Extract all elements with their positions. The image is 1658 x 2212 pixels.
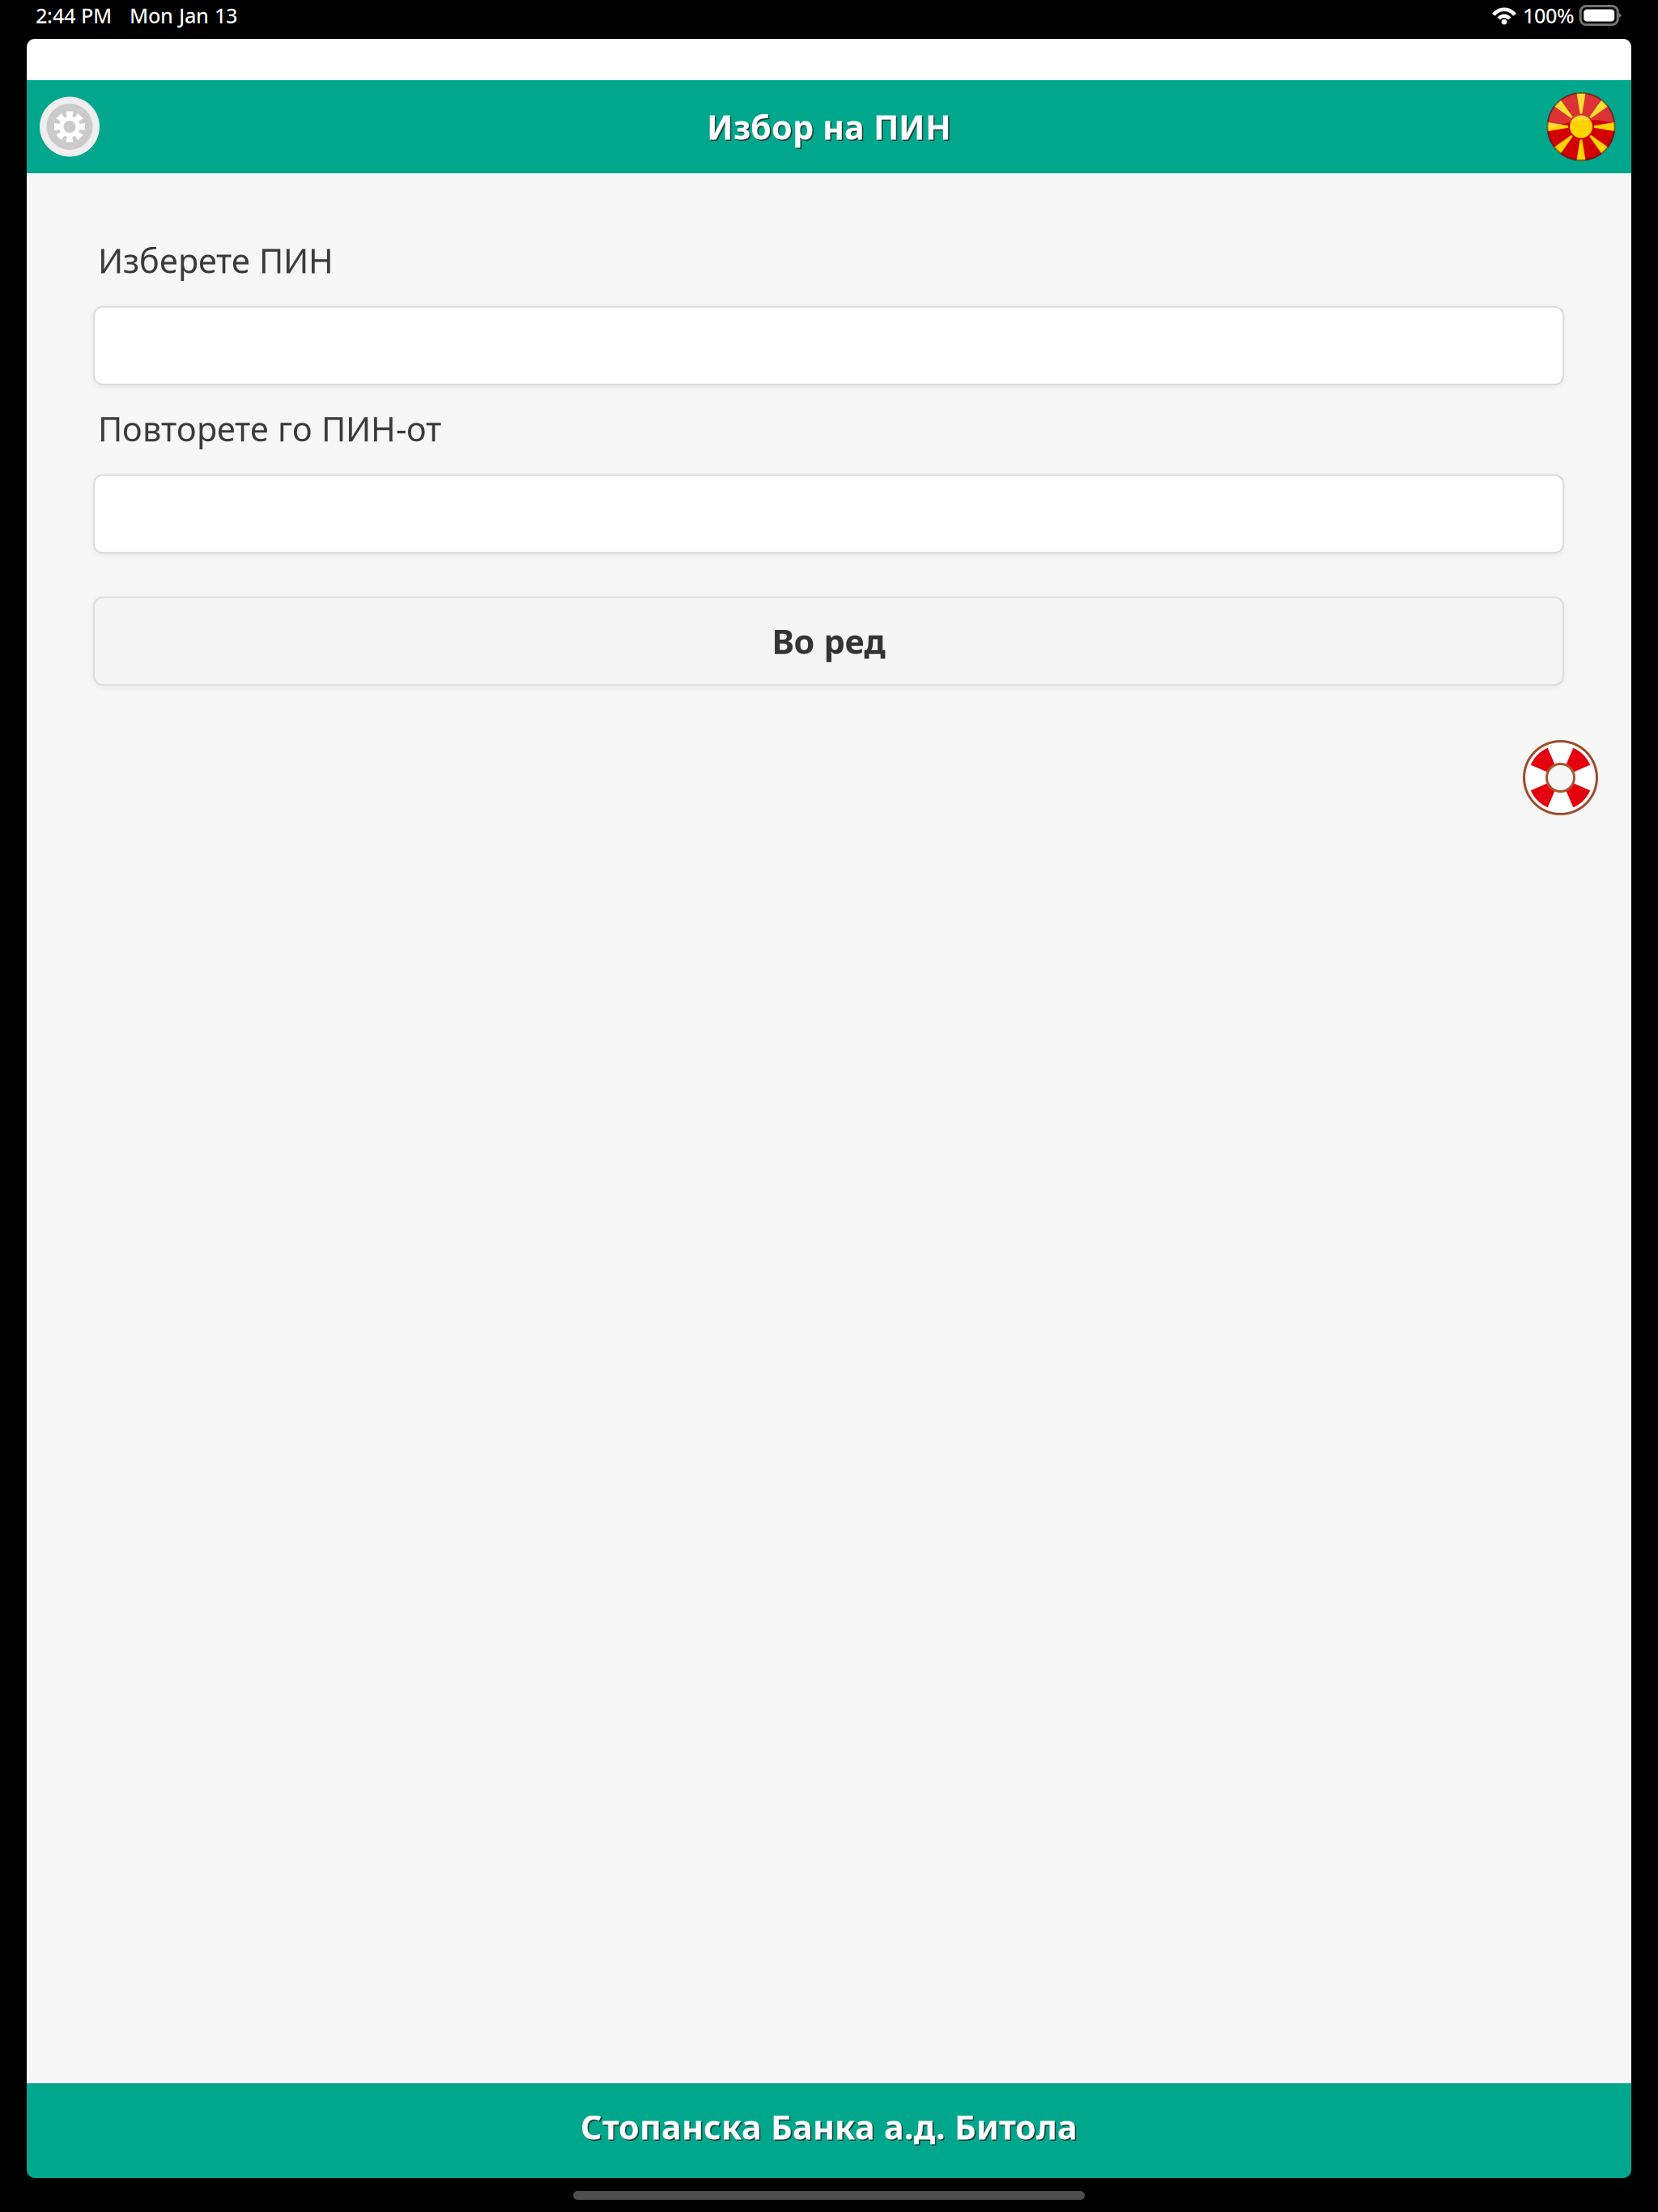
staticText: Изберете ПИН	[98, 238, 334, 282]
staticText: Во ред	[772, 619, 885, 663]
staticText: 100%	[1523, 2, 1575, 29]
staticText: Избор на ПИН	[707, 105, 951, 149]
button[interactable]: Settings	[31, 80, 108, 173]
staticText: Mon Jan 13	[130, 2, 237, 29]
staticText: Стопанска Банка а.д. Битола	[582, 2106, 1079, 2150]
button[interactable]: Во ред	[94, 597, 1563, 685]
button[interactable]: Change language	[1539, 80, 1623, 173]
staticText: 2:44 PM	[36, 2, 112, 29]
staticText: Стопанска Банка а.д. Битола	[580, 2104, 1078, 2149]
staticText: Повторете го ПИН-от	[98, 406, 441, 451]
button[interactable]: Help	[1523, 740, 1598, 815]
staticText: Избор на ПИН	[708, 106, 952, 150]
